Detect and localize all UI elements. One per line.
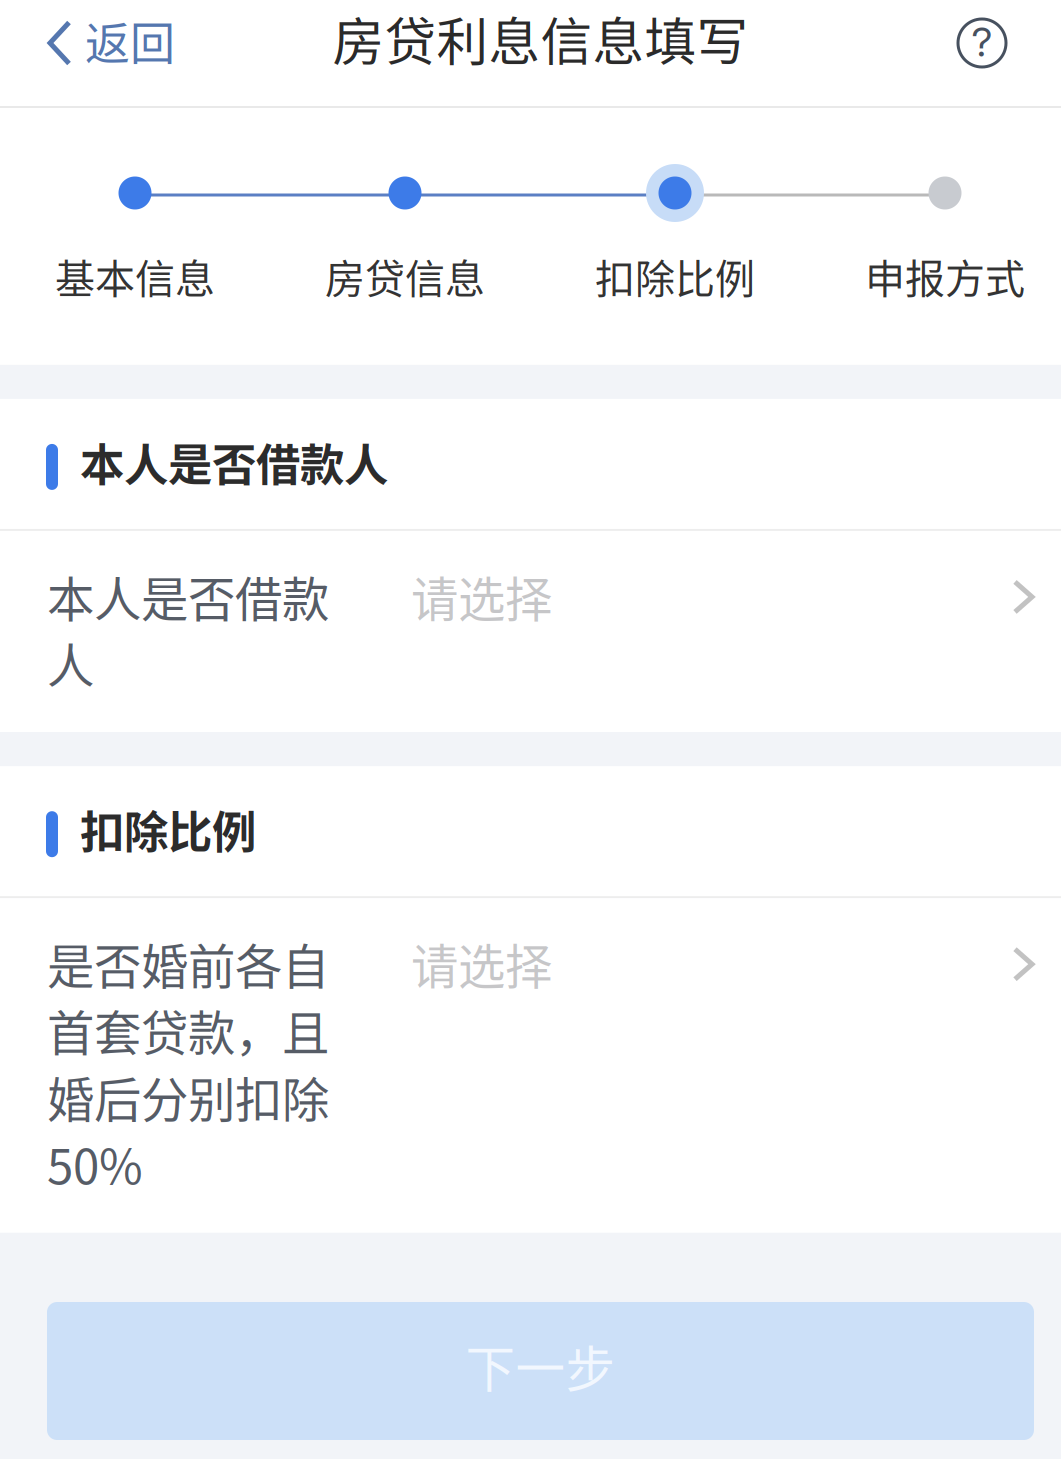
staticText: ? bbox=[971, 18, 992, 66]
button[interactable]: 是否婚前各自首套贷款，且婚后分别扣除50% bbox=[0, 898, 1061, 1233]
staticText: 房贷利息信息填写 bbox=[332, 1, 748, 75]
button[interactable]: 返回 bbox=[0, 0, 199, 86]
staticText: 房贷信息 bbox=[325, 247, 485, 305]
staticText: 返回 bbox=[85, 8, 175, 74]
staticText: 是否婚前各自首套贷款，且婚后分别扣除50% bbox=[47, 929, 329, 1198]
staticText: 申报方式 bbox=[865, 247, 1025, 305]
button[interactable]: Help bbox=[939, 0, 1025, 86]
button[interactable]: 下一步 bbox=[47, 1302, 1034, 1440]
staticText: 下一步 bbox=[465, 1330, 615, 1402]
staticText: 请选择 bbox=[411, 929, 552, 998]
staticText: 本人是否借款人 bbox=[47, 562, 329, 697]
staticText: 扣除比例 bbox=[80, 797, 256, 861]
button[interactable]: 本人是否借款人 bbox=[0, 531, 1061, 732]
staticText: 扣除比例 bbox=[595, 247, 755, 305]
staticText: 基本信息 bbox=[55, 247, 215, 305]
staticText: 本人是否借款人 bbox=[80, 430, 388, 494]
staticText: 请选择 bbox=[411, 562, 552, 630]
